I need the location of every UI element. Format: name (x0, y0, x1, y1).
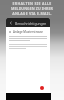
button[interactable]: Anlage Musterstrasse 12 (9, 30, 47, 34)
staticText: ANLAGE VIA E-MAIL. (12, 11, 52, 16)
staticText: MELDUNGEN ZU IHRER (11, 6, 53, 11)
staticText: ERHALTEN SIE ALLE (12, 1, 52, 6)
button[interactable]: Back (6, 18, 15, 27)
button[interactable]: Neue Meldung (40, 86, 44, 90)
staticText: Benachrichtigungen (15, 21, 47, 25)
staticText: Anlage Musterstrasse 12 (13, 30, 47, 34)
